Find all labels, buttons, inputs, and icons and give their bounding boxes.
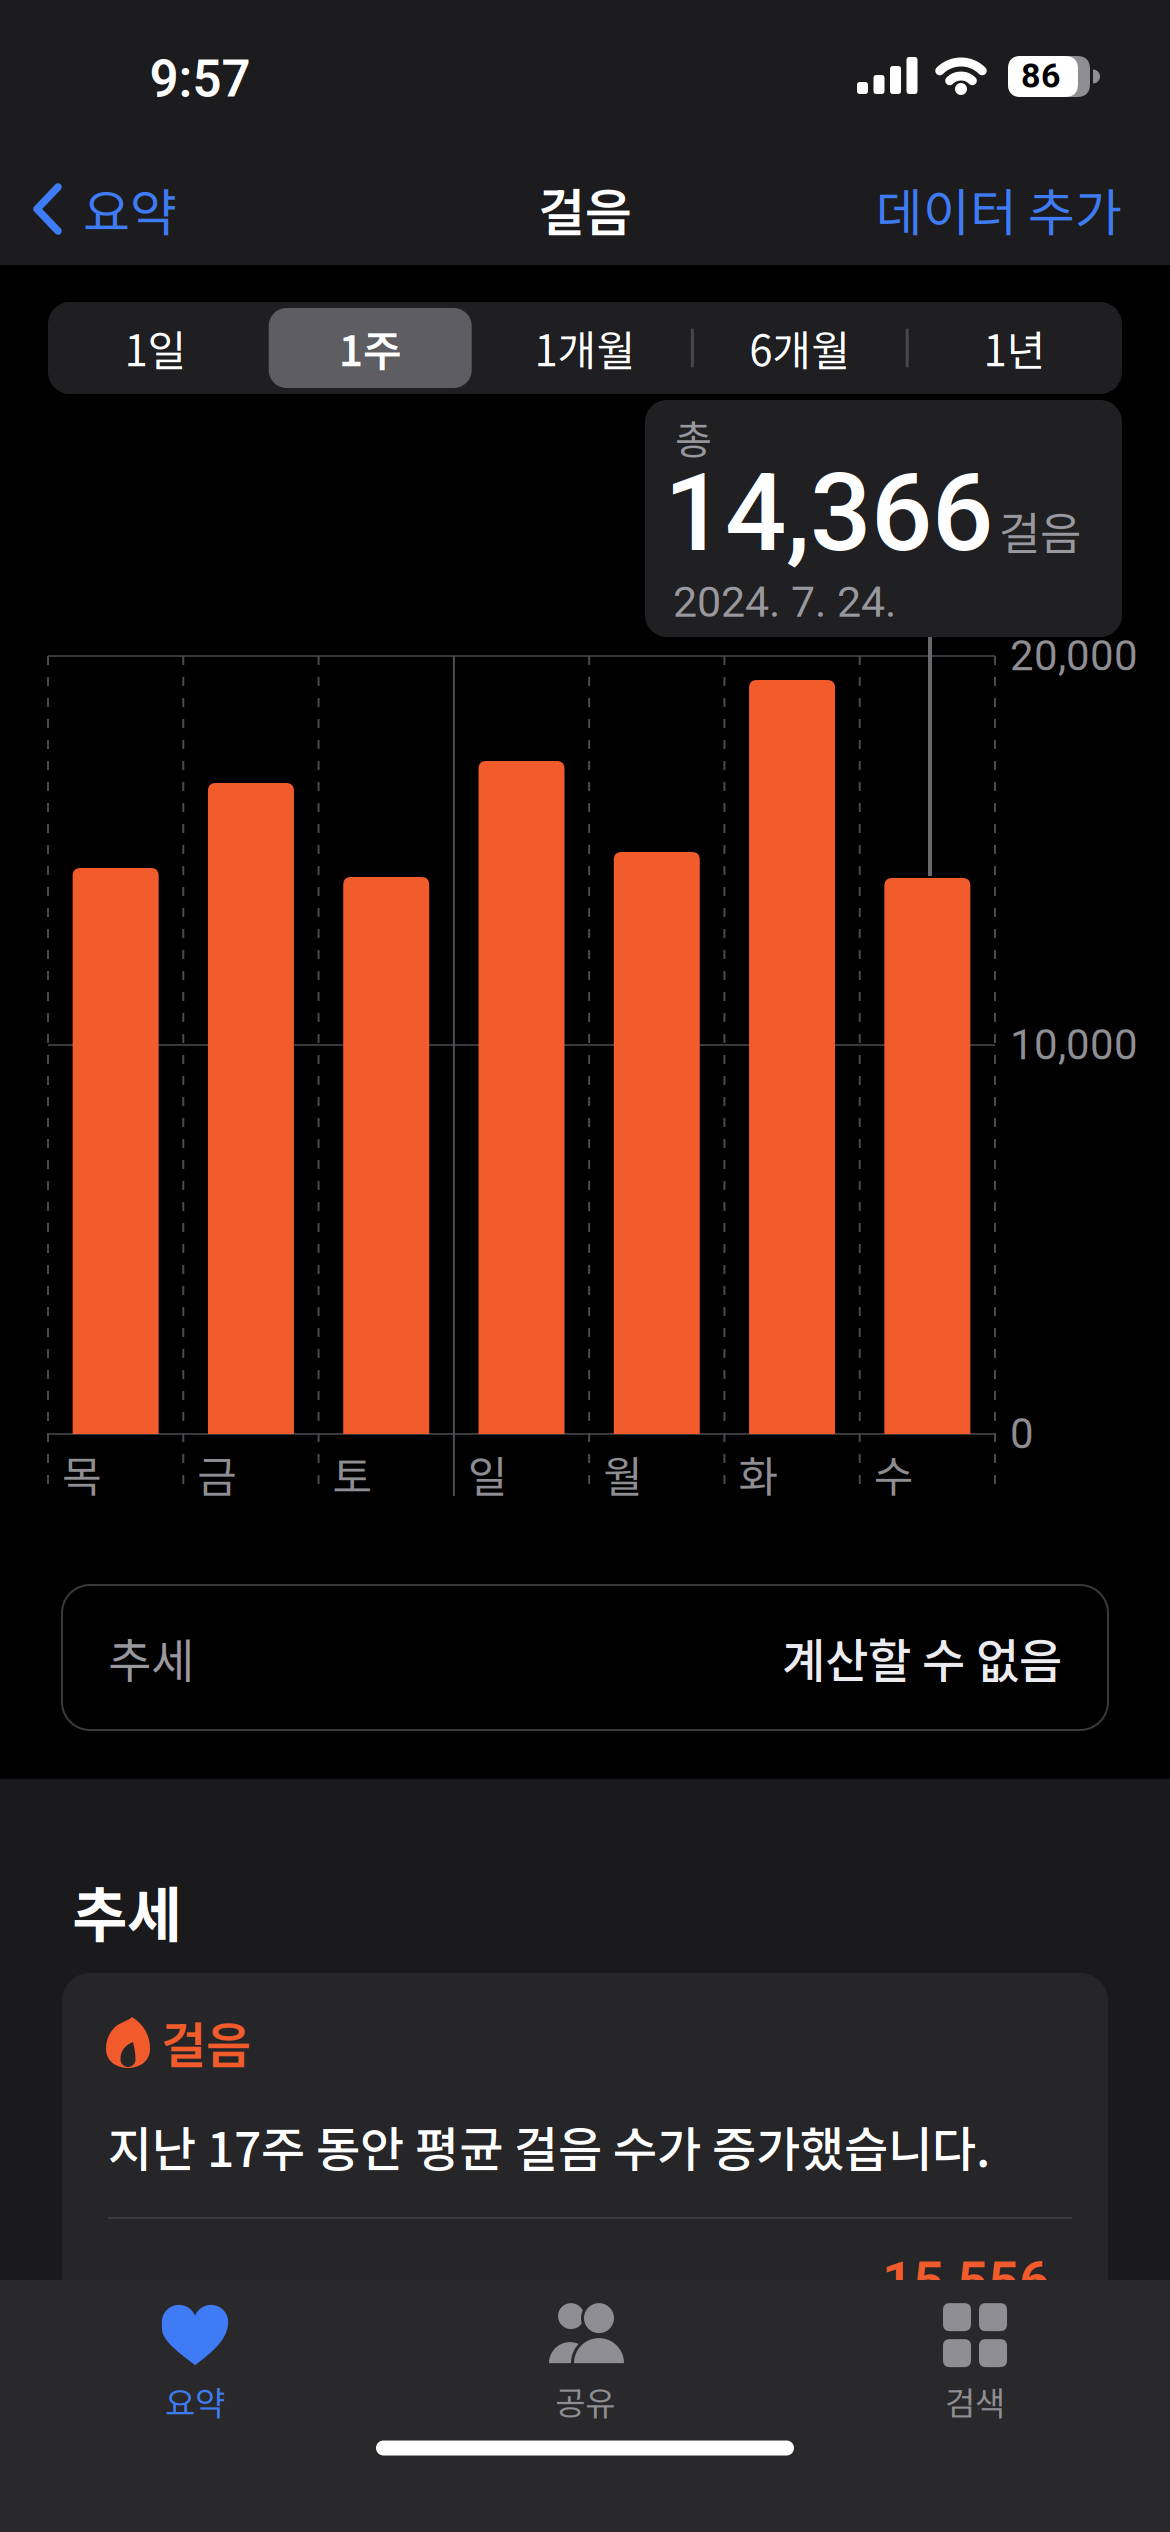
staticText: 목 bbox=[62, 1443, 102, 1505]
button[interactable]: 데이터 추가 bbox=[722, 159, 1122, 259]
button[interactable]: 1일 bbox=[48, 302, 262, 394]
button[interactable]: 1개월 bbox=[478, 302, 692, 394]
staticText: 추세 bbox=[108, 1623, 194, 1692]
staticText: 2024. 7. 24. bbox=[673, 577, 896, 627]
staticText: 수 bbox=[874, 1443, 914, 1505]
staticText: 공유 bbox=[555, 2377, 615, 2425]
staticText: 토 bbox=[333, 1443, 373, 1505]
staticText: 20,000 bbox=[1010, 631, 1138, 681]
staticText: 요약 bbox=[165, 2377, 225, 2425]
staticText: 1년 bbox=[984, 318, 1046, 378]
staticText: 1일 bbox=[124, 318, 186, 378]
staticText: 일 bbox=[468, 1443, 508, 1505]
staticText: 계산할 수 없음 bbox=[782, 1623, 1062, 1692]
staticText: 월 bbox=[603, 1443, 643, 1505]
button[interactable]: 검색 bbox=[825, 2293, 1125, 2433]
staticText: 걸음 bbox=[161, 2006, 251, 2077]
button[interactable]: 추세 bbox=[62, 1585, 1108, 1730]
staticText: 9:57 bbox=[149, 49, 250, 109]
staticText: 걸음 bbox=[999, 498, 1081, 563]
staticText: 데이터 추가 bbox=[876, 172, 1122, 246]
staticText: 14,366 bbox=[664, 450, 993, 576]
staticText: 1주 bbox=[339, 318, 402, 378]
button[interactable]: 요약 bbox=[45, 2293, 345, 2433]
staticText: 걸음 bbox=[538, 172, 632, 246]
staticText: 10,000 bbox=[1010, 1020, 1138, 1070]
button[interactable]: 걸음 bbox=[62, 1973, 1108, 2310]
staticText: 1개월 bbox=[534, 318, 635, 378]
staticText: 지난 17주 동안 평균 걸음 수가 증가했습니다. bbox=[108, 2111, 990, 2181]
staticText: 0 bbox=[1010, 1409, 1034, 1459]
staticText: 추세 bbox=[72, 1868, 182, 1954]
staticText: 검색 bbox=[945, 2377, 1005, 2425]
staticText: 화 bbox=[738, 1443, 778, 1505]
staticText: 15,556 bbox=[882, 2249, 1050, 2313]
button[interactable]: 1주 bbox=[263, 302, 477, 394]
staticText: 86 bbox=[1021, 56, 1061, 96]
button[interactable]: 공유 bbox=[435, 2293, 735, 2433]
staticText: 금 bbox=[197, 1443, 237, 1505]
staticText: 총 bbox=[675, 408, 712, 466]
staticText: 6개월 bbox=[749, 318, 850, 378]
button[interactable]: 1년 bbox=[908, 302, 1122, 394]
staticText: 요약 bbox=[83, 172, 177, 246]
button[interactable]: 6개월 bbox=[693, 302, 907, 394]
button[interactable]: 뒤로 bbox=[34, 159, 314, 259]
